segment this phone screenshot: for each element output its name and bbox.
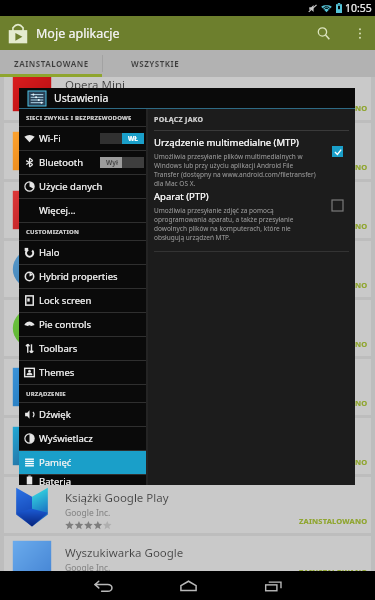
staticText: Moje aplikacje [36, 25, 120, 42]
button[interactable]: Urządzenie multimedialne (MTP) [154, 136, 349, 188]
button[interactable]: Recent apps [255, 571, 291, 600]
button[interactable]: Lock screen [19, 289, 146, 312]
staticText: Urządzenie multimedialne (MTP) [154, 136, 299, 149]
staticText: Wyświetlacz [39, 432, 93, 445]
staticText: Adobe [65, 212, 91, 224]
button[interactable]: Skype [4, 418, 371, 474]
button[interactable]: Halo [19, 241, 146, 264]
staticText: Wyszukiwarka Google [65, 545, 184, 561]
staticText: WSZYSTKIE [131, 58, 180, 69]
button[interactable]: Search [301, 16, 345, 50]
staticText: POŁĄCZ JAKO [154, 115, 204, 125]
staticText: Facebook [65, 271, 104, 283]
staticText: Pamięć [39, 456, 72, 469]
staticText: Evernote Corp. [65, 330, 125, 342]
staticText: WŁ [128, 134, 138, 143]
staticText: ZAINSTALOWANO [299, 103, 368, 113]
button[interactable]: Evernote [4, 300, 371, 356]
staticText: URZĄDZENIE [26, 390, 66, 398]
button[interactable]: Dropbox [4, 359, 371, 415]
staticText: Opera Mini [65, 77, 125, 93]
staticText: 10:55 [345, 1, 372, 15]
staticText: AVAST Software [65, 153, 128, 165]
button[interactable]: Pamięć [19, 451, 146, 474]
button[interactable]: Bluetooth [19, 151, 146, 174]
staticText: Umożliwia przesyłanie plików multimedial… [154, 152, 316, 188]
button[interactable]: Użycie danych [19, 175, 146, 198]
staticText: Avast Mobile Security [65, 136, 181, 152]
staticText: Książki Google Play [65, 490, 169, 506]
button[interactable]: Hybrid properties [19, 265, 146, 288]
button[interactable]: Dźwięk [19, 403, 146, 426]
staticText: Facebook [65, 254, 117, 270]
button[interactable]: Aparat (PTP) [154, 190, 349, 242]
staticText: Themes [39, 366, 75, 379]
button[interactable]: ZAINSTALOWANE [0, 50, 102, 77]
button[interactable]: Opera Mini [4, 77, 371, 120]
staticText: ZAINSTALOWANO [299, 567, 368, 577]
staticText: Google Inc. [65, 507, 111, 519]
staticText: ZAINSTALOWANO [299, 398, 368, 408]
staticText: Dropbox [65, 372, 112, 388]
staticText: Bateria [39, 475, 71, 485]
button[interactable]: WSZYSTKIE [103, 50, 207, 77]
staticText: ZAINSTALOWANO [299, 516, 368, 526]
staticText: Adobe Reader [65, 195, 142, 211]
button[interactable]: Avast Mobile Security [4, 123, 371, 179]
staticText: ZAINSTALOWANO [299, 162, 368, 172]
button[interactable]: Pie controls [19, 313, 146, 336]
staticText: ZAINSTALOWANO [299, 221, 368, 231]
staticText: Dropbox, Inc. [65, 389, 119, 401]
staticText: Dźwięk [39, 408, 71, 421]
staticText: Wył [106, 158, 118, 167]
staticText: Opera [65, 94, 90, 106]
staticText: ZAINSTALOWANE [14, 58, 89, 69]
button[interactable]: Adobe Reader [4, 182, 371, 238]
button[interactable]: Themes [19, 361, 146, 384]
staticText: Umożliwia przesyłanie zdjęć za pomocą op… [154, 206, 316, 242]
staticText: Toolbars [39, 342, 78, 355]
staticText: ZAINSTALOWANO [299, 457, 368, 467]
button[interactable]: Wi-Fi [19, 127, 146, 150]
staticText: ZAINSTALOWANO [299, 339, 368, 349]
staticText: Ustawienia [54, 91, 109, 105]
staticText: ZAINSTALOWANO [299, 280, 368, 290]
staticText: Pie controls [39, 318, 92, 331]
staticText: Google Inc. [65, 562, 111, 574]
button[interactable]: Wyszukiwarka Google [4, 536, 371, 584]
staticText: Hybrid properties [39, 270, 118, 283]
staticText: Wi-Fi [39, 132, 61, 145]
staticText: Halo [39, 246, 60, 259]
staticText: SIECI ZWYKŁE I BEZPRZEWODOWE [26, 114, 132, 122]
button[interactable]: Facebook [4, 241, 371, 297]
staticText: Użycie danych [39, 180, 103, 193]
button[interactable]: Więcej... [19, 199, 146, 222]
button[interactable]: Back [85, 571, 121, 600]
staticText: Bluetooth [39, 156, 84, 169]
staticText: Więcej... [39, 204, 76, 217]
staticText: Evernote [65, 313, 114, 329]
button[interactable]: More options [345, 16, 375, 50]
button[interactable]: Toolbars [19, 337, 146, 360]
button[interactable]: Bateria [19, 475, 146, 485]
staticText: Lock screen [39, 294, 92, 307]
staticText: CUSTOMIZATION [26, 228, 80, 236]
staticText: Skype [65, 431, 97, 447]
button[interactable]: Home [170, 571, 206, 600]
button[interactable]: Google Play [0, 16, 36, 50]
staticText: Aparat (PTP) [154, 190, 209, 203]
button[interactable]: Książki Google Play [4, 477, 371, 533]
staticText: Skype [65, 448, 89, 460]
button[interactable]: Wyświetlacz [19, 427, 146, 450]
